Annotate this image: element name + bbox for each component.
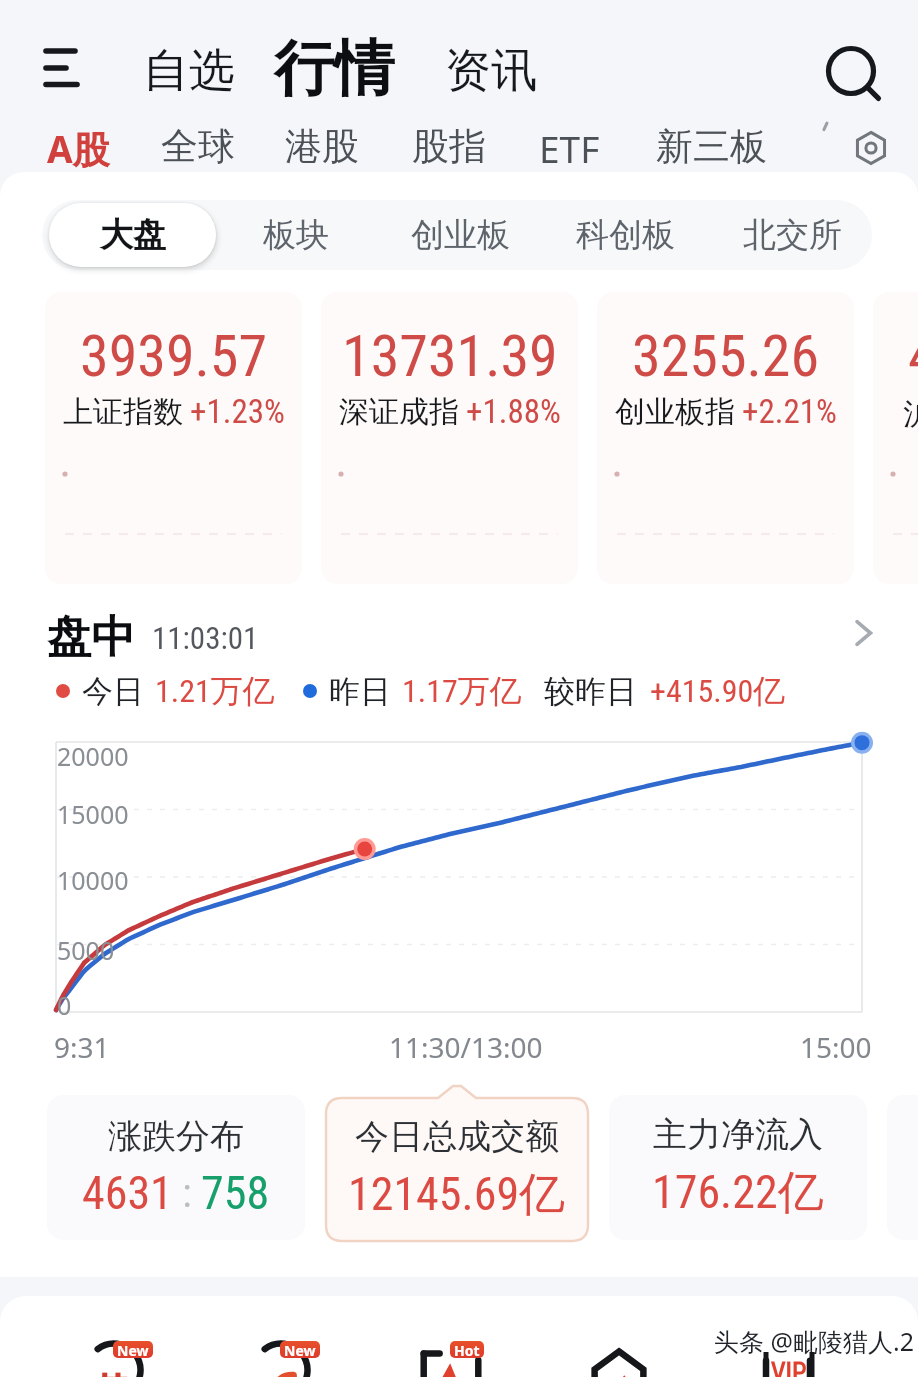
button[interactable]: 盘中 [47,610,135,665]
staticText: 港股 [285,123,359,170]
staticText: 自选 [143,42,235,100]
staticText: A股 [47,123,110,174]
button[interactable]: Fund [69,1318,159,1377]
button[interactable]: 13731.39 [321,292,578,584]
button[interactable]: 新三板 [653,120,770,173]
button[interactable]: Market [406,1318,496,1377]
button[interactable]: 4986.85 [873,292,918,584]
button[interactable]: 资讯 [441,38,541,104]
staticText: 资讯 [445,42,537,100]
staticText: 11:30/13:00 [389,1028,543,1066]
staticText: 深证成指 [339,393,459,431]
staticText: 上证指数 [63,393,183,431]
staticText: 新三板 [656,123,767,170]
staticText: 盘中 [47,610,135,665]
staticText: 行情 [274,31,394,107]
staticText: 股指 [412,123,486,170]
staticText: 15:00 [800,1028,872,1066]
button[interactable]: Wealth [236,1318,326,1377]
button[interactable]: ETF [536,120,603,176]
button[interactable]: Customize [848,125,894,171]
button[interactable]: 全球 [158,120,238,173]
staticText: New [284,1341,316,1358]
button[interactable]: 港股 [282,120,362,173]
staticText: 涨跌分布 [108,1115,244,1158]
staticText: 较昨日 [544,672,637,711]
button[interactable]: A股 [44,120,113,177]
button[interactable]: 创业板 [375,203,545,267]
staticText: 创业板指 [615,393,735,431]
staticText: 昨日 [329,672,391,711]
staticText: 10000 [57,863,129,897]
button[interactable]: 大盘 [49,203,216,267]
staticText: 9:31 [54,1028,110,1066]
button[interactable]: 3255.26 [597,292,854,584]
staticText: 15000 [57,797,129,831]
button[interactable]: 股指 [409,120,489,173]
staticText: 4631 [82,1166,173,1220]
staticText: ETF [539,123,600,173]
button[interactable]: 自选 [139,38,239,104]
staticText: 板块 [263,214,329,256]
staticText: 3255.26 [632,322,820,390]
button[interactable]: 北交所 [706,203,879,267]
staticText: 沪深300 [903,392,918,433]
staticText: New [117,1341,149,1358]
staticText: 758 [201,1166,270,1220]
button[interactable]: 今日总成交额 [326,1098,588,1241]
staticText: 5000 [57,933,115,967]
button[interactable]: Home [574,1318,664,1377]
staticText: 0 [57,988,72,1022]
staticText: 头条 @毗陵猎人.2 [714,1324,914,1358]
button[interactable]: Profile [743,1318,833,1377]
staticText: +2.21% [742,392,837,431]
staticText: 12145.69亿 [348,1166,566,1224]
staticText: 全球 [161,123,235,170]
staticText: 创业板 [411,214,510,256]
button[interactable]: Search [815,35,887,107]
button[interactable]: More [838,608,888,658]
button[interactable]: 行情 [270,27,398,111]
button[interactable]: 3939.57 [45,292,302,584]
staticText: 3939.57 [80,322,268,390]
staticText: 176.22亿 [652,1164,824,1222]
button[interactable]: 科创板 [545,203,706,267]
button[interactable]: 板块 [216,203,375,267]
staticText: 1.21万亿 [155,671,275,711]
staticText: VIP [771,1357,807,1377]
staticText: : [173,1170,201,1217]
staticText: 1.17万亿 [402,671,522,711]
staticText: +1.88% [466,392,561,431]
staticText: 今日总成交额 [355,1115,559,1158]
staticText: 北交所 [743,214,842,256]
staticText: 主力净流入 [653,1113,823,1156]
staticText: 20000 [57,739,129,773]
staticText: 13731.39 [342,322,558,390]
staticText: 今日 [82,672,144,711]
button[interactable]: 主力净流入 [609,1095,867,1240]
staticText: +1.23% [190,392,285,431]
staticText: Hot [454,1341,480,1358]
staticText: 4986.85 [908,322,918,390]
button[interactable]: Menu [30,32,94,96]
staticText: 11:03:01 [152,620,259,656]
staticText: 科创板 [576,214,675,256]
staticText: 大盘 [100,214,166,256]
button[interactable]: 涨跌分布 [47,1095,305,1240]
staticText: +415.90亿 [650,671,786,711]
